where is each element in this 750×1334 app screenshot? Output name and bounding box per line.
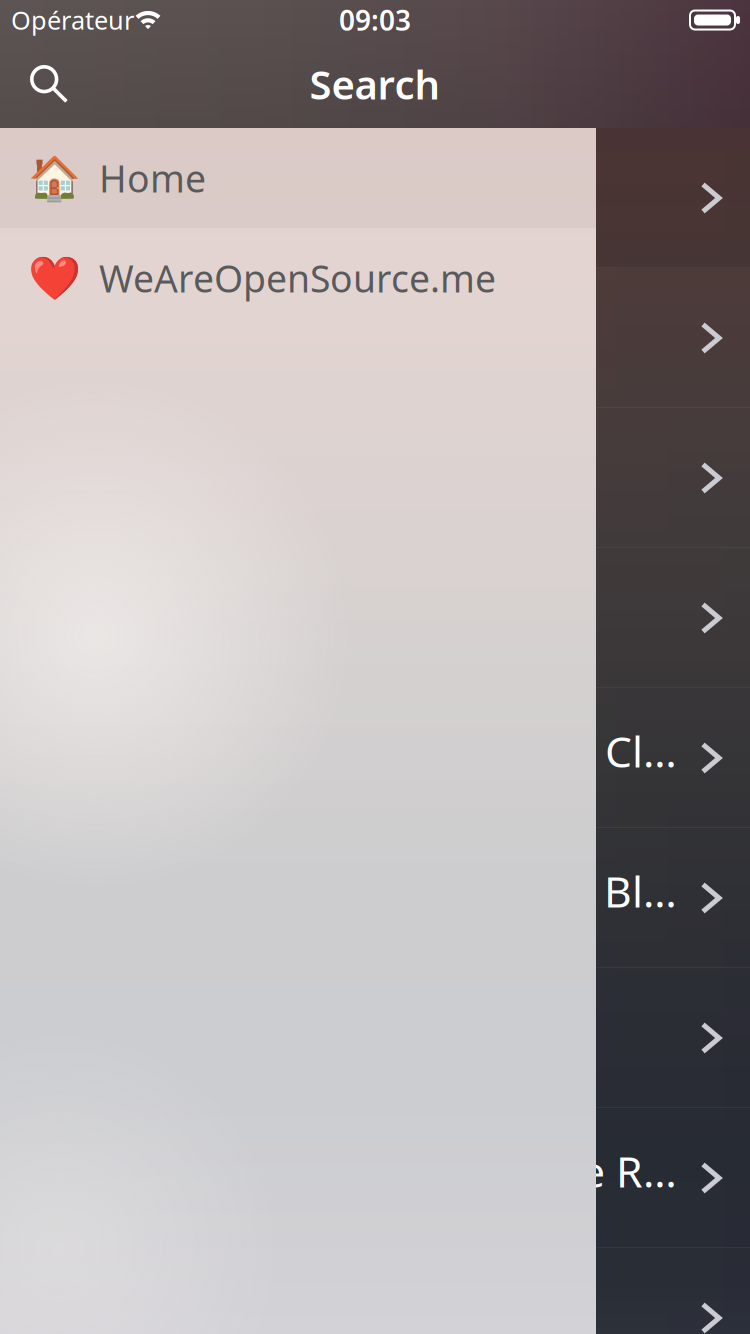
button[interactable]: Le Monde R… <box>0 1108 750 1248</box>
button[interactable] <box>0 268 750 408</box>
staticText: Opérateur <box>11 3 134 37</box>
staticText: WeAreOpenSource.me <box>99 253 496 303</box>
staticText: Le Monde R… <box>407 1143 677 1199</box>
staticText: ❤️ <box>28 254 81 302</box>
button[interactable]: Les Numériques Cl… <box>0 688 750 828</box>
button[interactable]: Search <box>0 40 98 128</box>
staticText: Les Numériques Cl… <box>270 723 677 779</box>
button[interactable] <box>0 548 750 688</box>
button[interactable] <box>0 968 750 1108</box>
staticText: MacGeneration Bl… <box>286 863 677 919</box>
button[interactable]: 🏠 <box>0 128 596 228</box>
button[interactable] <box>0 1248 750 1334</box>
button[interactable]: ❤️ <box>0 228 596 328</box>
staticText: 🏠 <box>28 154 81 202</box>
staticText: 09:03 <box>339 1 411 39</box>
button[interactable] <box>0 128 750 268</box>
staticText: Home <box>99 153 206 203</box>
button[interactable]: MacGeneration Bl… <box>0 828 750 968</box>
staticText: Search <box>309 57 440 110</box>
button[interactable] <box>0 408 750 548</box>
